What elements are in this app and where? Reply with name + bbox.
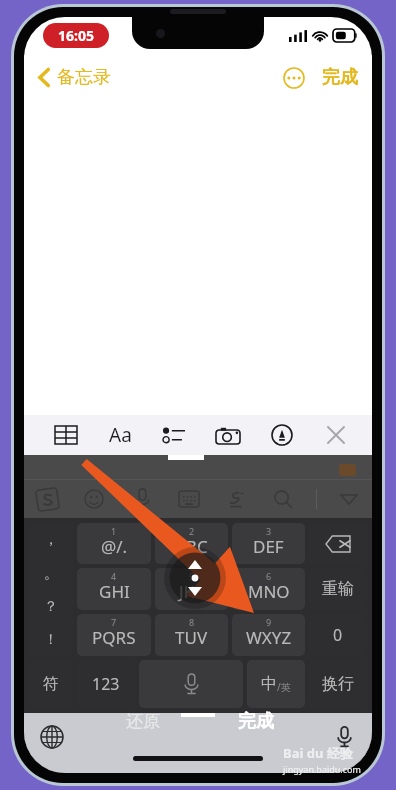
staticText: 4 bbox=[111, 570, 117, 582]
button[interactable]: Table bbox=[46, 415, 86, 455]
staticText: 3 bbox=[266, 525, 272, 537]
button[interactable]: Voice input bbox=[127, 484, 157, 514]
button[interactable]: Text format bbox=[100, 415, 140, 455]
staticText: 符 bbox=[43, 674, 59, 694]
staticText: /英 bbox=[277, 680, 291, 694]
button[interactable]: Handwriting bbox=[221, 484, 251, 514]
staticText: 还原 bbox=[126, 711, 160, 732]
button[interactable]: Search bbox=[268, 484, 298, 514]
button[interactable]: Dictation bbox=[337, 726, 352, 748]
button[interactable]: Backspace bbox=[309, 523, 367, 564]
staticText: 6 bbox=[266, 570, 272, 582]
button[interactable]: 换行 bbox=[309, 660, 367, 708]
button[interactable]: 123 bbox=[77, 660, 135, 708]
button[interactable]: Voice bbox=[139, 660, 243, 708]
button[interactable]: 4 bbox=[77, 568, 151, 610]
staticText: @/. bbox=[101, 535, 128, 558]
staticText: 完成 bbox=[322, 66, 358, 89]
button[interactable]: Close keyboard bbox=[316, 415, 356, 455]
staticText: 123 bbox=[92, 673, 120, 695]
staticText: 。 bbox=[44, 565, 58, 583]
button[interactable]: 7 bbox=[77, 614, 151, 656]
staticText: 中 bbox=[261, 674, 277, 694]
button[interactable]: ， bbox=[29, 523, 73, 557]
button[interactable]: Markup bbox=[262, 415, 302, 455]
button[interactable]: ！ bbox=[29, 623, 73, 656]
staticText: MNO bbox=[248, 580, 290, 603]
button[interactable]: Emoji bbox=[79, 484, 109, 514]
button[interactable]: 1 bbox=[77, 523, 151, 564]
staticText: JKL bbox=[179, 580, 204, 603]
staticText: Bai du 经验 bbox=[283, 744, 353, 762]
button[interactable]: 0 bbox=[309, 614, 367, 656]
staticText: PQRS bbox=[92, 626, 136, 649]
button[interactable]: Sogou bbox=[32, 484, 62, 514]
staticText: 2 bbox=[189, 525, 195, 537]
button[interactable]: 8 bbox=[155, 614, 228, 656]
staticText: 备忘录 bbox=[57, 66, 111, 89]
button[interactable]: 完成 bbox=[318, 60, 362, 95]
staticText: TUV bbox=[175, 626, 208, 649]
button[interactable]: 符 bbox=[29, 660, 73, 708]
staticText: ， bbox=[44, 531, 58, 549]
staticText: 1 bbox=[111, 525, 117, 537]
button[interactable]: ？ bbox=[29, 590, 73, 623]
staticText: GHI bbox=[99, 580, 130, 603]
staticText: ！ bbox=[44, 631, 58, 649]
button[interactable]: 中 bbox=[247, 660, 305, 708]
staticText: Aa bbox=[109, 422, 132, 448]
button[interactable]: Change language bbox=[40, 725, 64, 749]
staticText: 5 bbox=[189, 570, 195, 582]
staticText: 8 bbox=[189, 616, 195, 628]
button[interactable]: 2 bbox=[155, 523, 228, 564]
button[interactable]: 9 bbox=[232, 614, 305, 656]
button[interactable]: 重输 bbox=[309, 568, 367, 610]
button[interactable]: 5 bbox=[155, 568, 228, 610]
button[interactable]: 。 bbox=[29, 557, 73, 590]
staticText: 9 bbox=[266, 616, 272, 628]
staticText: 0 bbox=[333, 624, 343, 646]
staticText: 重输 bbox=[322, 579, 354, 599]
button[interactable]: Collapse bbox=[334, 484, 364, 514]
staticText: jingyan.baidu.com bbox=[283, 763, 361, 775]
staticText: DEF bbox=[253, 535, 284, 558]
button[interactable]: 备忘录 bbox=[24, 60, 119, 95]
button[interactable]: 3 bbox=[232, 523, 305, 564]
staticText: ABC bbox=[175, 535, 208, 558]
button[interactable]: 6 bbox=[232, 568, 305, 610]
button[interactable]: More options bbox=[278, 62, 310, 94]
staticText: 16:05 bbox=[58, 26, 94, 45]
staticText: 完成 bbox=[238, 710, 274, 733]
staticText: 7 bbox=[111, 616, 117, 628]
staticText: ？ bbox=[44, 598, 58, 616]
staticText: 换行 bbox=[322, 674, 354, 694]
button[interactable]: Checklist bbox=[154, 415, 194, 455]
button[interactable]: Keyboard layout bbox=[174, 484, 204, 514]
staticText: WXYZ bbox=[246, 626, 292, 649]
button[interactable]: Camera bbox=[208, 415, 248, 455]
